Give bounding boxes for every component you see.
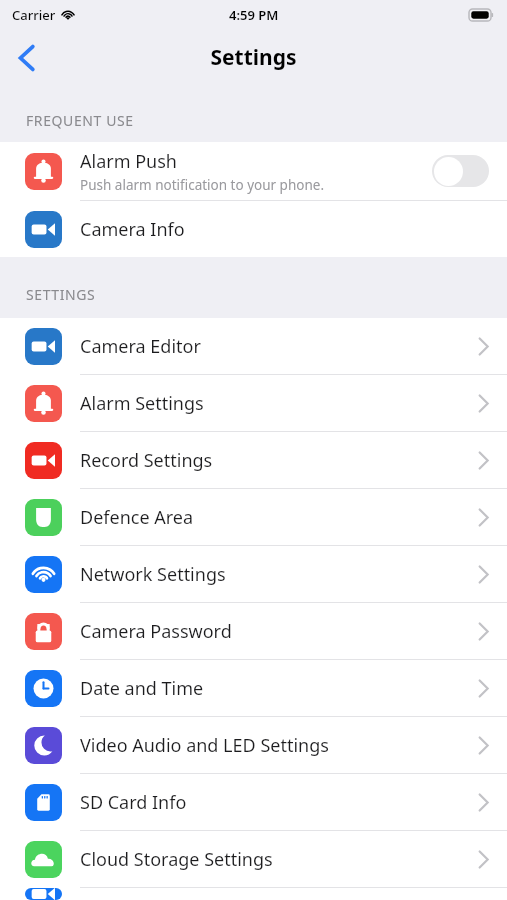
staticText: Camera Password: [80, 619, 478, 644]
button[interactable]: Alarm Push: [0, 142, 507, 200]
staticText: Cloud Storage Settings: [80, 847, 478, 872]
staticText: Network Settings: [80, 562, 478, 587]
staticText: Camera Info: [80, 217, 489, 242]
staticText: Settings: [210, 43, 297, 72]
staticText: SD Card Info: [80, 790, 478, 815]
button[interactable]: Video Audio and LED Settings: [0, 717, 507, 773]
staticText: Push alarm notification to your phone.: [80, 176, 325, 194]
staticText: Camera Editor: [80, 334, 478, 359]
staticText: Video Audio and LED Settings: [80, 733, 478, 758]
button[interactable]: Back: [0, 32, 52, 84]
button[interactable]: Cloud Storage Settings: [0, 831, 507, 887]
staticText: Date and Time: [80, 676, 478, 701]
staticText: Carrier: [12, 6, 56, 24]
staticText: Defence Area: [80, 505, 478, 530]
button[interactable]: Defence Area: [0, 489, 507, 545]
staticText: FREQUENT USE: [26, 111, 134, 130]
button[interactable]: Date and Time: [0, 660, 507, 716]
button[interactable]: Alarm Push toggle: [432, 155, 489, 187]
button[interactable]: Alarm Settings: [0, 375, 507, 431]
button[interactable]: [0, 888, 507, 900]
staticText: Alarm Settings: [80, 391, 478, 416]
button[interactable]: Camera Editor: [0, 318, 507, 374]
button[interactable]: Record Settings: [0, 432, 507, 488]
button[interactable]: Camera Password: [0, 603, 507, 659]
staticText: Record Settings: [80, 448, 478, 473]
button[interactable]: Camera Info: [0, 201, 507, 257]
staticText: Alarm Push: [80, 149, 177, 174]
button[interactable]: Network Settings: [0, 546, 507, 602]
staticText: 4:59 PM: [229, 6, 279, 24]
staticText: SETTINGS: [26, 285, 96, 304]
button[interactable]: SD Card Info: [0, 774, 507, 830]
